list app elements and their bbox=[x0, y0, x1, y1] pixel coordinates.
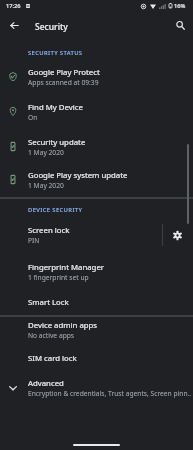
button[interactable]: Back bbox=[2, 13, 26, 37]
staticText: 1 May 2020 bbox=[28, 181, 64, 190]
button[interactable]: Google Play Protect bbox=[0, 62, 193, 92]
staticText: SECURITY STATUS bbox=[28, 49, 83, 57]
staticText: Apps scanned at 09:39 bbox=[28, 78, 99, 87]
button[interactable]: Screen lock settings bbox=[162, 220, 193, 250]
staticText: SIM card lock bbox=[28, 353, 77, 364]
button[interactable]: Device admin apps bbox=[0, 315, 193, 345]
staticText: Security bbox=[35, 21, 68, 33]
staticText: PIN bbox=[28, 236, 40, 245]
button[interactable]: Smart Lock bbox=[0, 291, 193, 313]
staticText: Encryption & credentials, Trust agents, … bbox=[28, 389, 191, 398]
staticText: Find My Device bbox=[28, 102, 83, 113]
staticText: On bbox=[28, 113, 38, 122]
button[interactable]: Fingerprint Manager bbox=[0, 257, 193, 287]
staticText: 1 May 2020 bbox=[28, 148, 64, 157]
button[interactable]: Advanced bbox=[0, 373, 193, 403]
button[interactable]: Screen lock bbox=[0, 220, 193, 250]
staticText: Smart Lock bbox=[28, 297, 69, 308]
button[interactable]: Find My Device bbox=[0, 97, 193, 127]
staticText: Advanced bbox=[28, 378, 64, 389]
staticText: 1 fingerprint set up bbox=[28, 273, 89, 282]
staticText: 17:26 bbox=[6, 2, 21, 10]
staticText: DEVICE SECURITY bbox=[28, 206, 83, 214]
button[interactable]: Security update bbox=[0, 132, 193, 162]
button[interactable]: Search bbox=[168, 13, 192, 37]
staticText: 16% bbox=[174, 2, 186, 10]
staticText: Device admin apps bbox=[28, 320, 98, 331]
staticText: No active apps bbox=[28, 331, 75, 340]
staticText: Google Play Protect bbox=[28, 67, 100, 78]
staticText: Google Play system update bbox=[28, 170, 128, 181]
staticText: Security update bbox=[28, 137, 86, 148]
staticText: Screen lock bbox=[28, 225, 70, 236]
staticText: Fingerprint Manager bbox=[28, 262, 105, 273]
button[interactable]: SIM card lock bbox=[0, 347, 193, 369]
button[interactable]: Google Play system update bbox=[0, 165, 193, 195]
